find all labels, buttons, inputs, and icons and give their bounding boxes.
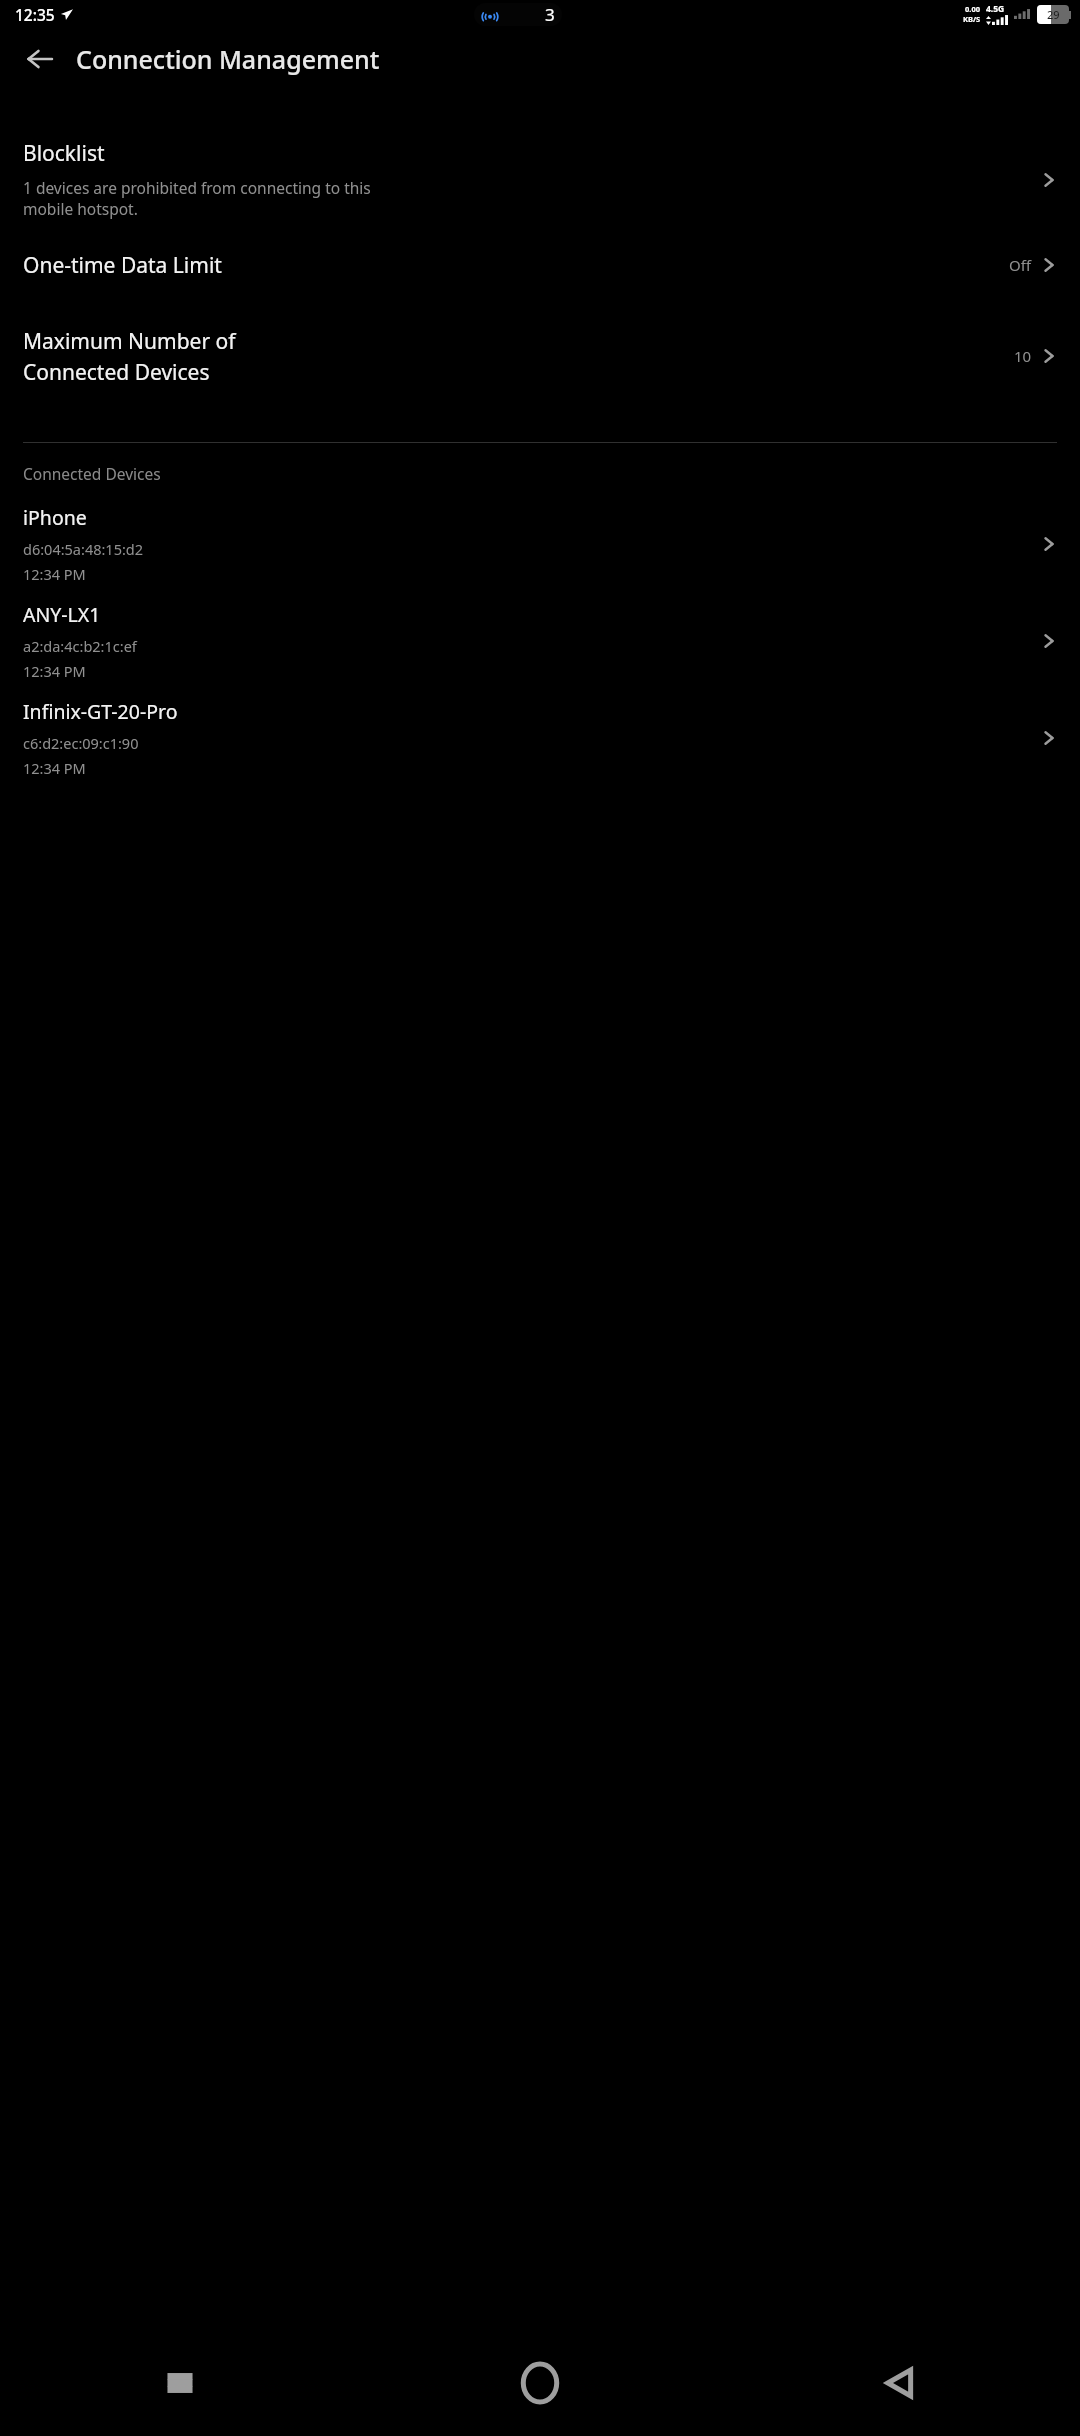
staticText: ANY-LX1 (23, 601, 101, 628)
staticText: 1 devices are prohibited from connecting… (23, 177, 371, 220)
button[interactable]: Home (360, 2330, 720, 2436)
staticText: iPhone (23, 504, 87, 531)
button[interactable]: Back (16, 35, 64, 83)
staticText: 12:34 PM (23, 758, 86, 778)
staticText: a2:da:4c:b2:1c:ef (23, 636, 137, 656)
staticText: Connected Devices (23, 463, 161, 484)
staticText: c6:d2:ec:09:c1:90 (23, 733, 139, 753)
button[interactable]: iPhone (0, 504, 1080, 584)
staticText: Maximum Number of Connected Devices (23, 327, 1014, 386)
button[interactable]: ANY-LX1 (0, 601, 1080, 681)
staticText: Off (1009, 255, 1032, 275)
staticText: KB/S (963, 14, 981, 24)
staticText: Infinix-GT-20-Pro (23, 698, 178, 725)
staticText: 10 (1014, 346, 1032, 366)
staticText: 0.00 (965, 4, 980, 14)
staticText: 4.5G (986, 3, 1005, 15)
staticText: 29 (1047, 7, 1060, 22)
staticText: 3 (545, 3, 555, 26)
button[interactable]: Back (720, 2330, 1080, 2436)
button[interactable]: Blocklist (0, 139, 1080, 220)
staticText: Blocklist (23, 139, 105, 168)
button[interactable]: One-time Data Limit (0, 220, 1080, 310)
staticText: 12:34 PM (23, 564, 86, 584)
staticText: 12:34 PM (23, 661, 86, 681)
staticText: Connection Management (76, 42, 380, 76)
staticText: 12:35 (15, 4, 55, 25)
button[interactable]: Infinix-GT-20-Pro (0, 698, 1080, 778)
staticText: One-time Data Limit (23, 251, 1009, 280)
staticText: d6:04:5a:48:15:d2 (23, 539, 144, 559)
button[interactable]: Recent apps (0, 2330, 360, 2436)
button[interactable]: Maximum Number of Connected Devices (0, 310, 1080, 402)
